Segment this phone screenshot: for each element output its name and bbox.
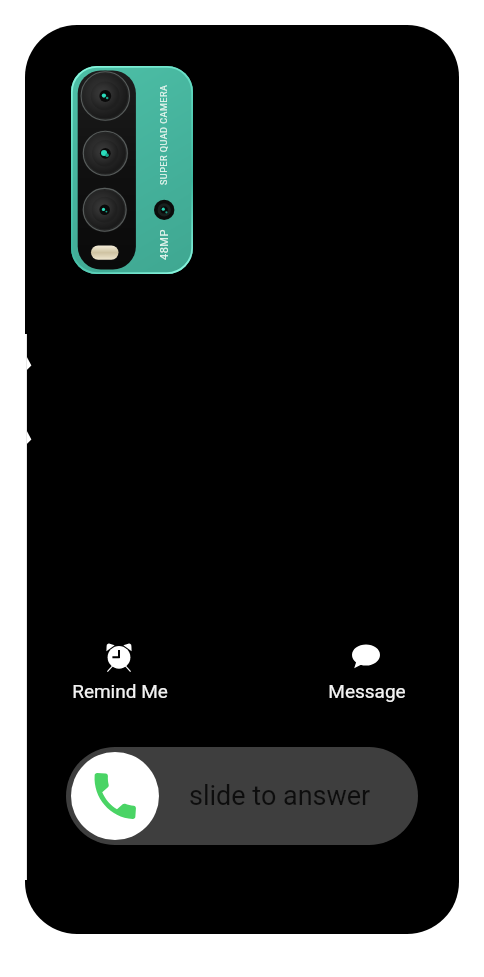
staticText: Message: [328, 680, 406, 702]
button[interactable]: Answer call: [66, 747, 418, 845]
staticText: slide to answer: [189, 780, 371, 812]
staticText: Remind Me: [72, 680, 168, 702]
button[interactable]: Message: [291, 638, 442, 720]
other: Message: [350, 640, 382, 672]
button[interactable]: Remind Me: [44, 638, 195, 720]
other: Remind Me: [103, 640, 135, 672]
other: Answer call: [86, 767, 144, 825]
